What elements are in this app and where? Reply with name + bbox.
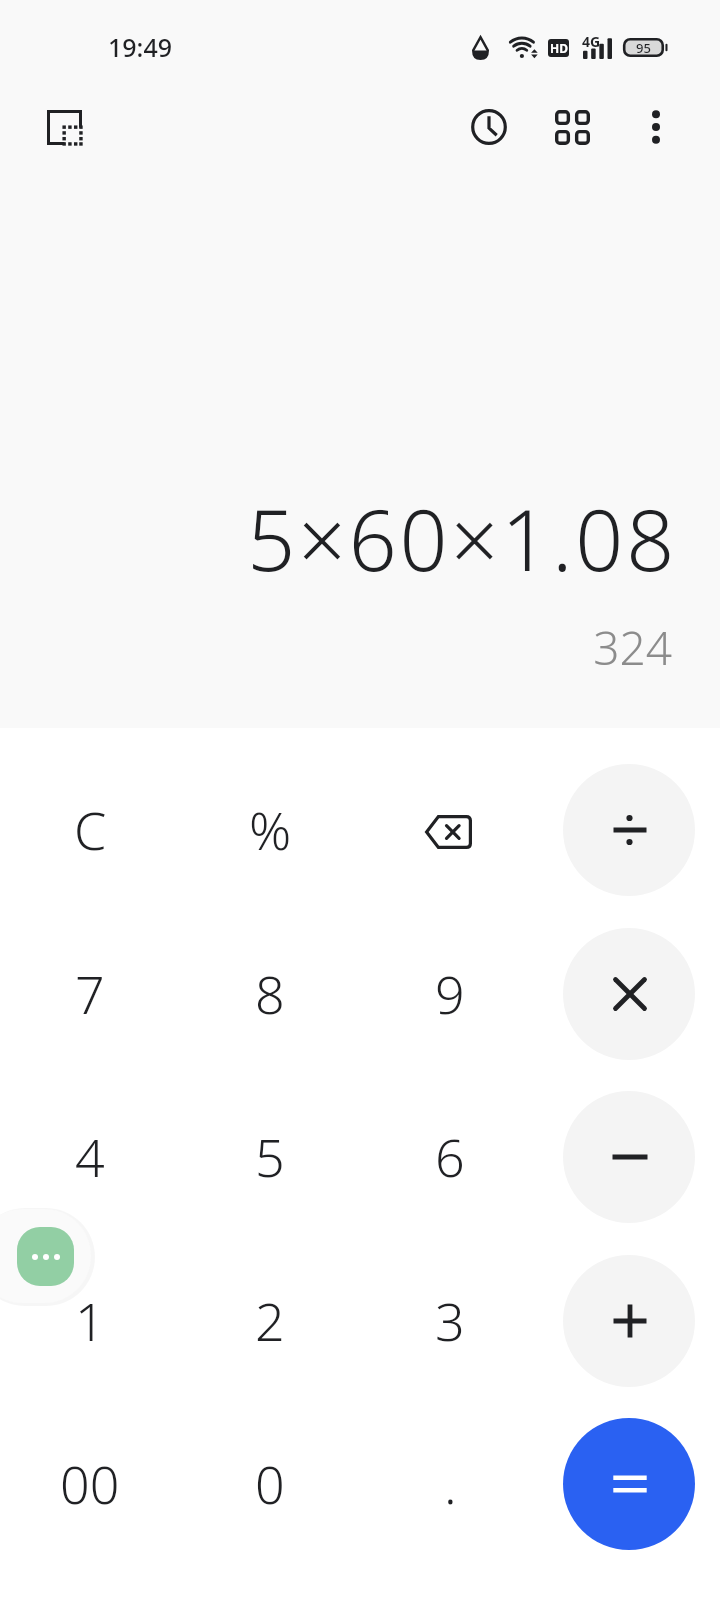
button[interactable]: %: [180, 748, 360, 912]
button[interactable]: 0: [180, 1402, 360, 1566]
staticText: 95: [623, 39, 664, 57]
staticText: 1: [75, 1285, 105, 1356]
button[interactable]: Backspace: [360, 748, 540, 912]
button[interactable]: 5: [180, 1075, 360, 1239]
button[interactable]: Plus: [563, 1255, 695, 1387]
button[interactable]: Equals: [563, 1418, 695, 1550]
button[interactable]: Divide: [563, 764, 695, 896]
button[interactable]: .: [360, 1402, 540, 1566]
button[interactable]: 8: [180, 912, 360, 1076]
staticText: 324: [0, 616, 672, 679]
button[interactable]: Minus: [563, 1091, 695, 1223]
staticText: 2: [255, 1285, 285, 1356]
button[interactable]: 2: [180, 1239, 360, 1403]
staticText: 0: [255, 1448, 285, 1519]
staticText: 3: [435, 1285, 465, 1356]
staticText: 5×60×1.08: [0, 481, 677, 595]
button[interactable]: History: [453, 91, 525, 163]
staticText: .: [444, 1448, 457, 1519]
button[interactable]: 1: [0, 1239, 180, 1403]
staticText: 00: [60, 1448, 120, 1519]
staticText: C: [74, 794, 107, 865]
button[interactable]: 3: [360, 1239, 540, 1403]
staticText: 4: [75, 1121, 105, 1192]
staticText: 8: [255, 958, 285, 1029]
staticText: 4G: [582, 32, 601, 51]
staticText: 9: [435, 958, 465, 1029]
button[interactable]: 6: [360, 1075, 540, 1239]
staticText: 5: [255, 1121, 285, 1192]
button[interactable]: More options: [620, 91, 692, 163]
staticText: %: [249, 794, 292, 865]
staticText: 7: [75, 958, 105, 1029]
button[interactable]: 00: [0, 1402, 180, 1566]
button[interactable]: 4: [0, 1075, 180, 1239]
button[interactable]: Multiply: [563, 928, 695, 1060]
staticText: 6: [435, 1121, 465, 1192]
button[interactable]: 7: [0, 912, 180, 1076]
button[interactable]: Unit converter: [536, 91, 608, 163]
button[interactable]: C: [0, 748, 180, 912]
staticText: HD: [550, 40, 568, 56]
staticText: 19:49: [108, 30, 173, 64]
button[interactable]: Assistant: [0, 1209, 91, 1303]
button[interactable]: Scientific mode: [28, 91, 100, 163]
button[interactable]: 9: [360, 912, 540, 1076]
